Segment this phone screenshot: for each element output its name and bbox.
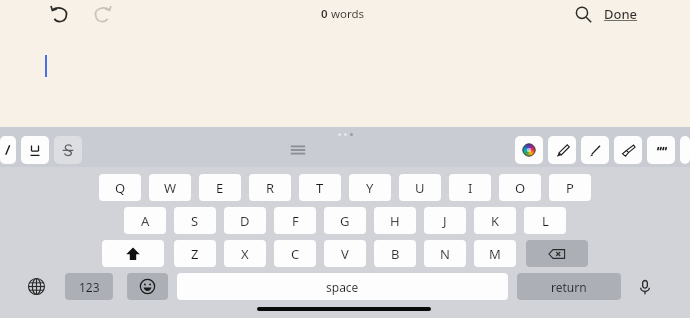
staticText: R [266, 179, 275, 197]
staticText: W [164, 179, 177, 197]
button[interactable]: Shift [102, 240, 164, 267]
button[interactable]: I [449, 174, 491, 201]
button[interactable]: H [374, 207, 416, 234]
staticText: L [542, 212, 549, 230]
button[interactable]: Return [517, 273, 621, 300]
staticText: Y [366, 179, 374, 197]
button[interactable]: N [424, 240, 466, 267]
staticText: 123 [79, 279, 100, 295]
staticText: Z [191, 245, 199, 263]
staticText: F [292, 212, 299, 230]
button[interactable]: Strikethrough [54, 136, 82, 164]
button[interactable]: S [174, 207, 216, 234]
button[interactable]: O [499, 174, 541, 201]
button[interactable]: Dictation [634, 273, 656, 300]
staticText: U [415, 179, 425, 197]
button[interactable]: Y [349, 174, 391, 201]
button[interactable]: Menu [281, 136, 315, 164]
button[interactable]: F [274, 207, 316, 234]
button[interactable]: Numbers [65, 273, 113, 300]
button[interactable]: U [399, 174, 441, 201]
button[interactable]: Switch language [24, 273, 48, 300]
staticText: T [316, 179, 324, 197]
button[interactable]: Done [604, 5, 638, 23]
staticText: V [341, 245, 349, 263]
staticText: I [468, 179, 473, 197]
button[interactable]: C [274, 240, 316, 267]
staticText: G [340, 212, 350, 230]
staticText: return [551, 279, 587, 295]
staticText: B [391, 245, 400, 263]
button[interactable]: Emoji [127, 273, 168, 300]
staticText: 0 [321, 6, 328, 22]
button[interactable]: Search [568, 1, 598, 27]
button[interactable]: Space [177, 273, 508, 300]
button[interactable]: A [124, 207, 166, 234]
button[interactable]: L [524, 207, 566, 234]
button[interactable]: Pen [581, 136, 609, 164]
button[interactable]: B [374, 240, 416, 267]
button[interactable]: More [680, 136, 690, 164]
button[interactable]: Redo [86, 1, 118, 27]
button[interactable]: Backspace [526, 240, 588, 267]
staticText: space [326, 279, 359, 295]
button[interactable]: X [224, 240, 266, 267]
button[interactable]: V [324, 240, 366, 267]
button[interactable]: T [299, 174, 341, 201]
staticText: P [566, 179, 574, 197]
button[interactable]: Q [99, 174, 141, 201]
staticText: O [515, 179, 526, 197]
button[interactable]: Z [174, 240, 216, 267]
staticText: words [331, 6, 365, 22]
staticText: Done [604, 5, 638, 23]
staticText: H [390, 212, 400, 230]
button[interactable]: Underline [21, 136, 49, 164]
button[interactable]: E [199, 174, 241, 201]
button[interactable]: W [149, 174, 191, 201]
staticText: J [443, 212, 447, 230]
button[interactable]: Highlighter [548, 136, 576, 164]
button[interactable]: K [474, 207, 516, 234]
button[interactable]: Color [515, 136, 543, 164]
staticText: E [216, 179, 224, 197]
button[interactable]: Quote [647, 136, 675, 164]
staticText: M [489, 245, 501, 263]
button[interactable]: M [474, 240, 516, 267]
button[interactable]: R [249, 174, 291, 201]
staticText: N [440, 245, 450, 263]
button[interactable]: P [549, 174, 591, 201]
staticText: Q [115, 179, 126, 197]
button[interactable]: Brush [614, 136, 642, 164]
staticText: A [141, 212, 150, 230]
staticText: K [491, 212, 500, 230]
staticText: S [191, 212, 199, 230]
staticText: C [291, 245, 300, 263]
button[interactable]: D [224, 207, 266, 234]
button[interactable]: G [324, 207, 366, 234]
button[interactable]: Italic [0, 136, 16, 164]
staticText: D [240, 212, 250, 230]
button[interactable]: J [424, 207, 466, 234]
staticText: X [241, 245, 249, 263]
button[interactable]: Undo [44, 1, 76, 27]
